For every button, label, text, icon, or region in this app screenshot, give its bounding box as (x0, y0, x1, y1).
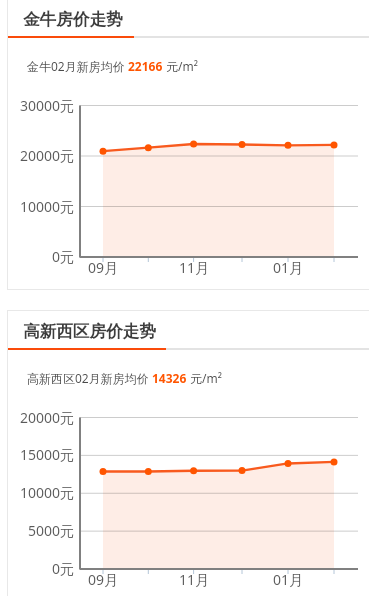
staticText: 10000元 (8, 197, 74, 216)
staticText: 元/m² (187, 370, 223, 386)
staticText: 09月 (83, 570, 123, 589)
staticText: 15000元 (8, 445, 74, 464)
staticText: 0元 (8, 247, 74, 266)
staticText: 金牛02月新房均价 (27, 58, 128, 74)
staticText: 金牛房价走势 (23, 9, 123, 30)
staticText: 高新西区02月新房均价 (27, 370, 152, 386)
staticText: 14326 (152, 370, 187, 386)
staticText: 30000元 (8, 96, 74, 115)
staticText: 20000元 (8, 146, 74, 165)
staticText: 5000元 (8, 521, 74, 540)
button[interactable]: 金牛房价走势 (0, 0, 369, 290)
staticText: 01月 (268, 258, 308, 277)
staticText: 11月 (174, 258, 214, 277)
staticText: 22166 (128, 58, 163, 74)
staticText: 0元 (8, 559, 74, 578)
button[interactable]: 高新西区房价走势 (0, 310, 369, 596)
staticText: 元/m² (163, 58, 199, 74)
staticText: 09月 (83, 258, 123, 277)
staticText: 01月 (268, 570, 308, 589)
staticText: 20000元 (8, 408, 74, 427)
staticText: 高新西区房价走势 (23, 321, 156, 342)
other: 金牛房价走势 折线图 (0, 0, 369, 290)
staticText: 11月 (174, 570, 214, 589)
other: 高新西区房价走势 折线图 (0, 310, 369, 596)
staticText: 10000元 (8, 483, 74, 502)
